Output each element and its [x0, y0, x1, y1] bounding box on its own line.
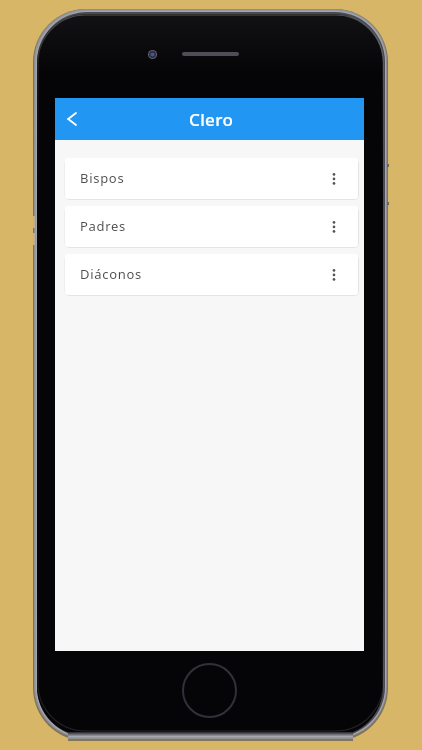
button[interactable]: More options	[318, 254, 350, 295]
button[interactable]: Back	[55, 98, 89, 140]
button[interactable]: More options	[318, 206, 350, 247]
button[interactable]: Bispos	[65, 158, 358, 199]
button[interactable]: More options	[318, 158, 350, 199]
staticText: Padres	[80, 217, 127, 235]
button[interactable]: Padres	[65, 206, 358, 247]
button[interactable]: Diáconos	[65, 254, 358, 295]
staticText: Bispos	[80, 169, 125, 187]
staticText: Diáconos	[80, 265, 142, 283]
staticText: Clero	[189, 108, 234, 131]
